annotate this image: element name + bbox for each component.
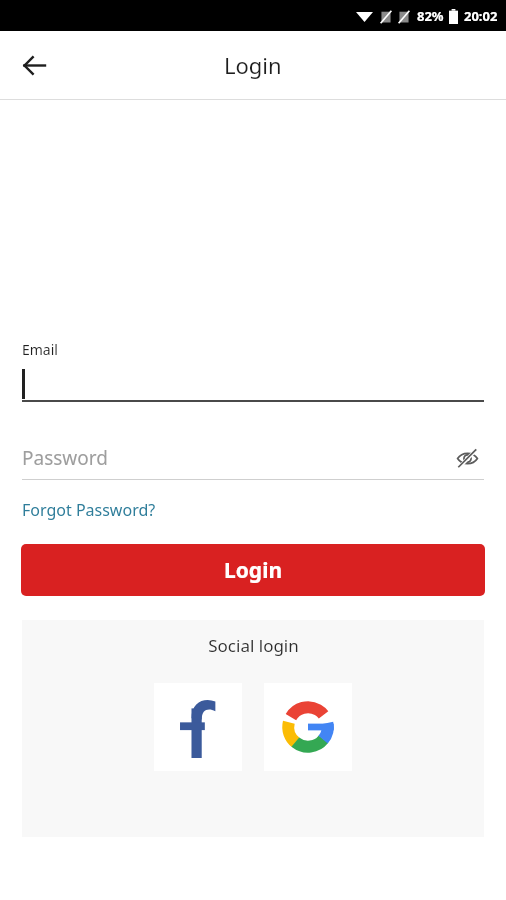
staticText: Email <box>22 340 58 359</box>
staticText: Password <box>22 445 108 471</box>
button[interactable]: Login <box>21 544 485 596</box>
staticText: Social login <box>208 634 299 657</box>
staticText: Forgot Password? <box>22 499 156 521</box>
staticText: 20:02 <box>464 7 498 25</box>
button[interactable]: Sign in with Facebook <box>154 683 242 771</box>
button[interactable]: Email <box>22 340 484 402</box>
button[interactable]: Show password <box>450 442 484 474</box>
staticText: Login <box>224 50 282 80</box>
button[interactable]: Forgot Password? <box>22 497 156 523</box>
staticText: Login <box>224 556 283 585</box>
button[interactable]: Back <box>10 41 58 89</box>
staticText: 82% <box>417 7 444 25</box>
button[interactable]: Sign in with Google <box>264 683 352 771</box>
button[interactable]: Password <box>22 442 484 480</box>
